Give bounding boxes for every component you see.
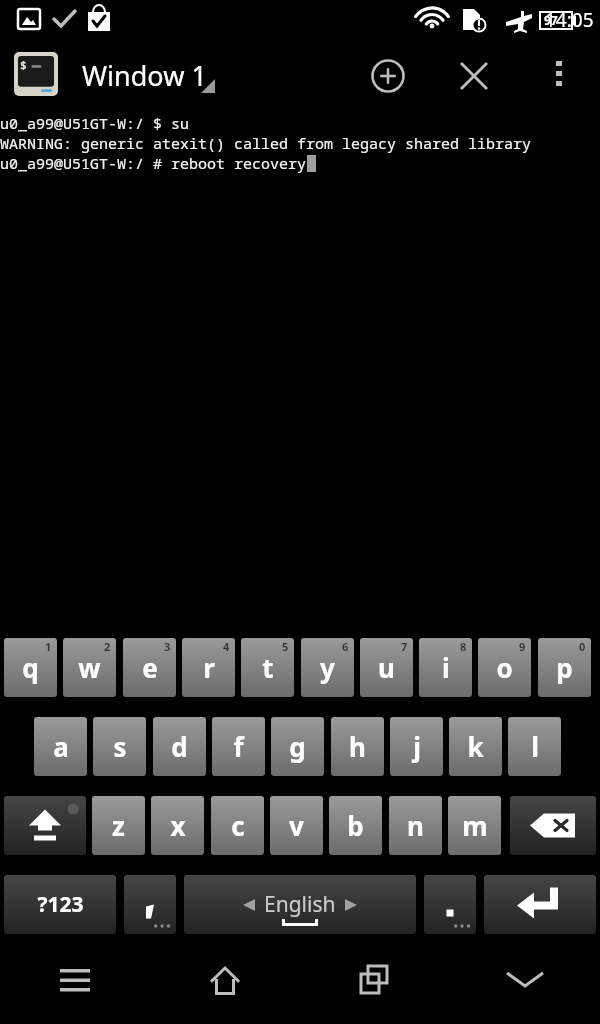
button[interactable]: x (151, 796, 204, 855)
staticText: i (442, 650, 450, 685)
button[interactable]: r (182, 638, 235, 697)
button[interactable]: a (34, 717, 87, 776)
staticText: a (53, 729, 69, 764)
button[interactable]: b (329, 796, 382, 855)
staticText: 3 (164, 639, 171, 654)
staticText: 97 (544, 12, 558, 28)
staticText: WARNING: generic atexit() called from le… (0, 133, 532, 153)
button[interactable]: q (4, 638, 57, 697)
staticText: f (233, 729, 244, 764)
button[interactable]: Backspace (510, 796, 596, 855)
staticText: n (407, 808, 424, 843)
button[interactable]: Recent apps (300, 945, 450, 1014)
button[interactable]: Comma (124, 875, 176, 934)
staticText: 6 (342, 639, 349, 654)
button[interactable]: k (449, 717, 502, 776)
button[interactable]: e (123, 638, 176, 697)
staticText: m (462, 808, 488, 843)
button[interactable]: g (271, 717, 324, 776)
staticText: w (78, 650, 101, 685)
staticText: s (113, 729, 127, 764)
button[interactable]: i (419, 638, 472, 697)
button[interactable]: Hide keyboard (450, 945, 600, 1014)
staticText: k (467, 729, 484, 764)
staticText: b (347, 808, 364, 843)
staticText: 2 (104, 639, 111, 654)
button[interactable]: Shift (4, 796, 86, 855)
button[interactable]: ?123 (4, 875, 116, 934)
staticText: u0_a99@U51GT-W:/ $ su (0, 113, 190, 133)
staticText: v (289, 808, 304, 843)
staticText: 0 (579, 639, 586, 654)
button[interactable]: h (331, 717, 384, 776)
staticText: u (378, 650, 395, 685)
button[interactable]: p (538, 638, 591, 697)
button[interactable]: New window (360, 48, 416, 104)
staticText: ?123 (37, 890, 84, 919)
staticText: 14:05 (545, 7, 594, 33)
staticText: g (289, 729, 306, 764)
button[interactable]: n (389, 796, 442, 855)
button[interactable]: Close window (446, 48, 502, 104)
button[interactable]: y (301, 638, 354, 697)
staticText: y (320, 650, 335, 685)
button[interactable]: j (390, 717, 443, 776)
staticText: 4 (223, 639, 230, 654)
button[interactable]: Home (150, 945, 300, 1014)
staticText: x (170, 808, 186, 843)
staticText: Window 1 (82, 57, 207, 94)
button[interactable]: Menu (0, 945, 150, 1014)
staticText: u0_a99@U51GT-W:/ # reboot recovery (0, 153, 307, 173)
staticText: t (262, 650, 274, 685)
button[interactable]: t (241, 638, 294, 697)
button[interactable]: More options (532, 48, 586, 102)
button[interactable]: l (508, 717, 561, 776)
staticText: p (556, 650, 573, 685)
button[interactable]: c (211, 796, 264, 855)
button[interactable]: Enter (484, 875, 596, 934)
staticText: c (231, 808, 245, 843)
button[interactable]: d (153, 717, 206, 776)
button[interactable]: Period (424, 875, 476, 934)
button[interactable]: m (448, 796, 501, 855)
staticText: 7 (401, 639, 408, 654)
button[interactable]: o (478, 638, 531, 697)
staticText: q (22, 650, 39, 685)
staticText: z (112, 808, 125, 843)
staticText: 8 (460, 639, 467, 654)
staticText: d (171, 729, 188, 764)
staticText: 5 (282, 639, 289, 654)
button[interactable]: Space, English (184, 875, 416, 934)
staticText: o (496, 650, 513, 685)
button[interactable]: s (93, 717, 146, 776)
button[interactable]: f (212, 717, 265, 776)
staticText: l (531, 729, 539, 764)
staticText: 1 (45, 639, 52, 654)
staticText: j (413, 729, 421, 764)
staticText: English (264, 890, 336, 919)
staticText: r (203, 650, 215, 685)
button[interactable]: u (360, 638, 413, 697)
button[interactable]: v (270, 796, 323, 855)
staticText: 9 (519, 639, 526, 654)
button[interactable]: z (92, 796, 145, 855)
button[interactable]: w (63, 638, 116, 697)
staticText: e (142, 650, 158, 685)
staticText: h (349, 729, 366, 764)
staticText: $ (20, 57, 27, 72)
